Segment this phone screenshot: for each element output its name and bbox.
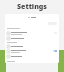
other: Setting	[7, 45, 10, 48]
button[interactable]: Setting	[5, 30, 59, 36]
other: Setting	[7, 55, 10, 58]
other: Setting	[7, 50, 10, 53]
button[interactable]: Toggle	[53, 50, 57, 52]
other: Setting	[7, 32, 10, 35]
other: Setting	[7, 37, 10, 40]
button[interactable]: Setting	[5, 36, 59, 40]
button[interactable]: Setting	[5, 48, 59, 54]
button[interactable]: Setting	[5, 54, 59, 58]
button[interactable]: Setting	[5, 44, 59, 48]
staticText: Settings	[17, 2, 47, 12]
